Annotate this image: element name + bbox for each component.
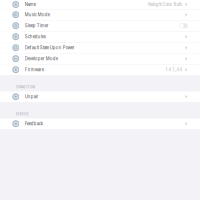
staticText: Developer Mode: [25, 56, 58, 61]
staticText: Music Mode: [25, 12, 50, 17]
staticText: Sleep Timer: [25, 23, 49, 28]
staticText: Feedback: [25, 121, 43, 126]
staticText: Unpair: [25, 94, 39, 99]
button[interactable]: Firmware: [0, 64, 200, 75]
staticText: Yeelight Color Bulb: [148, 2, 183, 7]
staticText: Default State Upon Power: [25, 45, 75, 50]
button[interactable]: Schedules: [0, 31, 200, 42]
staticText: Schedules: [25, 34, 46, 39]
staticText: 1.4.1_44: [166, 67, 183, 72]
staticText: CONNECTION: [16, 85, 35, 89]
button[interactable]: Sleep Timer: [0, 20, 200, 31]
button[interactable]: Feedback: [0, 118, 200, 129]
button[interactable]: Music Mode: [0, 9, 200, 20]
button[interactable]: Default State Upon Power: [0, 42, 200, 53]
staticText: Name: [25, 2, 36, 7]
button[interactable]: Developer Mode: [0, 53, 200, 64]
staticText: Firmware: [25, 67, 44, 72]
staticText: SERVICE: [16, 112, 29, 116]
button[interactable]: Name: [0, 0, 200, 9]
button[interactable]: Unpair: [0, 91, 200, 102]
